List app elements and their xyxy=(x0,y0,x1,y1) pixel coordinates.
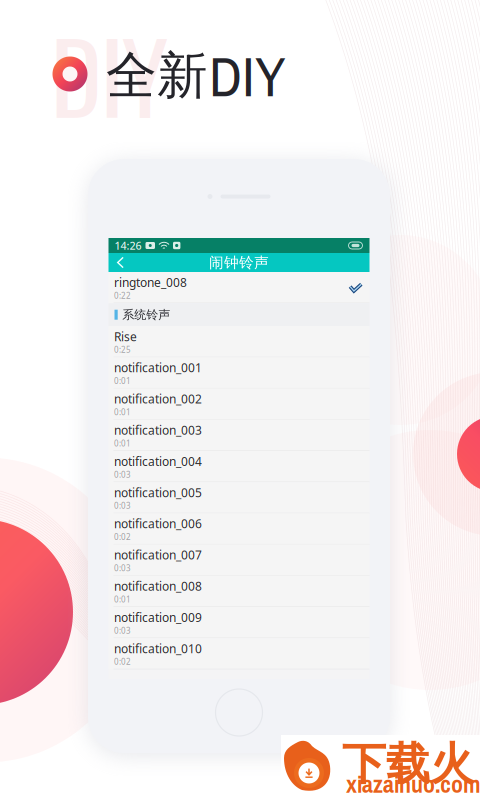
button[interactable]: notification_008 xyxy=(108,576,369,607)
staticText: 系统铃声 xyxy=(122,307,170,322)
staticText: notification_009 xyxy=(114,609,202,625)
staticText: 0:02 xyxy=(114,656,131,667)
button[interactable]: notification_001 xyxy=(108,357,369,389)
staticText: 0:03 xyxy=(114,563,131,573)
staticText: 14:26 xyxy=(114,238,141,253)
staticText: notification_008 xyxy=(114,578,202,594)
staticText: Rise xyxy=(114,328,137,344)
staticText: 0:03 xyxy=(114,469,131,480)
staticText: notification_003 xyxy=(114,422,202,438)
staticText: 0:01 xyxy=(114,376,131,386)
staticText: 0:01 xyxy=(114,594,131,605)
button[interactable]: notification_006 xyxy=(108,513,369,545)
staticText: notification_007 xyxy=(114,547,202,563)
staticText: Y xyxy=(121,2,168,146)
staticText: 0:03 xyxy=(114,625,131,636)
staticText: notification_002 xyxy=(114,391,202,407)
staticText: 0:01 xyxy=(114,407,131,417)
staticText: notification_005 xyxy=(114,484,202,500)
staticText: I xyxy=(100,2,124,146)
staticText: DIY xyxy=(209,38,286,114)
button[interactable]: notification_005 xyxy=(108,482,369,513)
staticText: 0:01 xyxy=(114,438,131,449)
button[interactable]: notification_002 xyxy=(108,389,369,420)
staticText: 0:02 xyxy=(114,532,131,542)
button[interactable]: Rise xyxy=(108,326,369,357)
staticText: 0:22 xyxy=(114,290,131,301)
staticText: 闹钟铃声 xyxy=(209,253,269,271)
staticText: D xyxy=(50,2,101,146)
staticText: ringtone_008 xyxy=(114,274,187,290)
staticText: 0:03 xyxy=(114,500,131,511)
staticText: notification_010 xyxy=(114,640,202,656)
button[interactable]: notification_003 xyxy=(108,420,369,451)
button[interactable]: Back xyxy=(108,253,132,272)
staticText: notification_001 xyxy=(114,360,202,376)
button[interactable]: notification_009 xyxy=(108,607,369,638)
staticText: xiazaihuo.com xyxy=(346,768,480,800)
staticText: 0:25 xyxy=(114,344,131,355)
button[interactable]: notification_004 xyxy=(108,451,369,482)
staticText: 全新 xyxy=(106,45,208,107)
button[interactable]: ringtone_008 xyxy=(108,272,369,303)
button[interactable]: notification_007 xyxy=(108,545,369,576)
staticText: notification_004 xyxy=(114,453,202,469)
staticText: 下载火 xyxy=(342,737,474,791)
staticText: notification_006 xyxy=(114,516,202,532)
button[interactable]: notification_010 xyxy=(108,638,369,669)
